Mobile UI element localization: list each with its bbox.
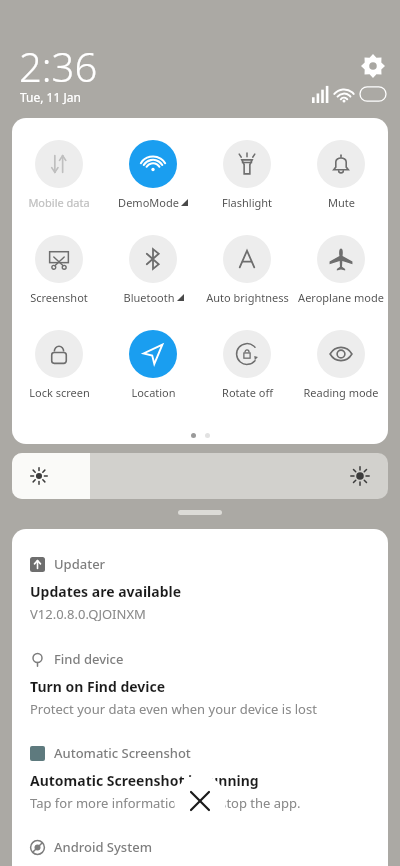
button[interactable]: Bluetooth — [106, 235, 200, 305]
button[interactable]: Flashlight — [200, 140, 294, 210]
staticText: DemoMode — [118, 195, 179, 210]
staticText: Screenshot — [30, 290, 88, 305]
staticText: Tap for more information or to stop the … — [30, 794, 301, 812]
button[interactable]: Location — [106, 330, 200, 400]
staticText: Turn on Find device — [30, 677, 166, 696]
button[interactable]: Rotate off — [200, 330, 294, 400]
button[interactable]: DemoMode — [106, 140, 200, 210]
staticText: Lock screen — [29, 385, 90, 400]
button[interactable]: Android System — [30, 838, 370, 856]
staticText: Android System — [54, 838, 152, 856]
staticText: Mobile data — [28, 195, 90, 210]
button[interactable]: Aeroplane mode — [294, 235, 388, 305]
staticText: Flashlight — [222, 195, 272, 210]
button[interactable]: Find device — [30, 650, 370, 668]
staticText: Auto brightness — [206, 290, 289, 305]
button[interactable]: Updater — [30, 555, 370, 573]
staticText: Automatic Screenshot is running — [30, 771, 259, 790]
staticText: Updater — [54, 555, 106, 573]
staticText: Mute — [328, 195, 355, 210]
button[interactable]: Lock screen — [12, 330, 106, 400]
staticText: Reading mode — [303, 385, 379, 400]
button[interactable]: Automatic Screenshot — [30, 744, 370, 762]
button[interactable]: Mobile data — [12, 140, 106, 210]
staticText: Automatic Screenshot — [54, 744, 191, 762]
staticText: Rotate off — [222, 385, 273, 400]
button[interactable]: Settings — [358, 51, 388, 81]
button[interactable]: Close — [174, 775, 226, 827]
staticText: Tue, 11 Jan — [20, 89, 81, 105]
button[interactable]: Mute — [294, 140, 388, 210]
staticText: 2:36 — [19, 39, 98, 93]
staticText: Updates are available — [30, 582, 182, 601]
button[interactable]: Brightness — [12, 453, 388, 499]
button[interactable]: Auto brightness — [200, 235, 294, 305]
staticText: V12.0.8.0.QJOINXM — [30, 605, 146, 623]
staticText: Find device — [54, 650, 124, 668]
staticText: Location — [131, 385, 176, 400]
staticText: Bluetooth — [123, 290, 175, 305]
staticText: Protect your data even when your device … — [30, 700, 317, 718]
button[interactable]: Screenshot — [12, 235, 106, 305]
button[interactable]: Reading mode — [294, 330, 388, 400]
staticText: Aeroplane mode — [298, 290, 384, 305]
